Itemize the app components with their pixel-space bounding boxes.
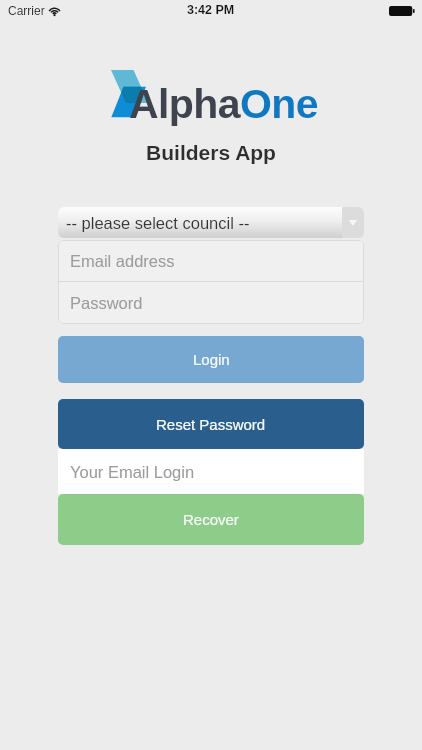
staticText: Reset Password — [156, 416, 266, 433]
staticText: Recover — [183, 511, 239, 528]
staticText: One — [240, 81, 318, 127]
staticText: Carrier — [8, 4, 45, 17]
staticText: Email address — [70, 252, 175, 270]
staticText: Alpha — [129, 81, 240, 127]
other: Battery — [389, 6, 414, 16]
button[interactable]: Login — [58, 336, 364, 383]
button[interactable]: Email address — [58, 240, 364, 281]
button[interactable]: Recover — [58, 494, 364, 545]
staticText: Your Email Login — [70, 463, 195, 481]
staticText: Builders App — [0, 141, 422, 164]
button[interactable]: Password — [58, 282, 364, 324]
staticText: Password — [70, 294, 143, 312]
staticText: Login — [193, 351, 230, 368]
button[interactable]: -- please select council -- — [58, 207, 364, 238]
staticText: 3:42 PM — [187, 3, 235, 17]
button[interactable]: Your Email Login — [58, 449, 364, 494]
button[interactable]: Reset Password — [58, 399, 364, 449]
staticText: -- please select council -- — [66, 214, 250, 232]
